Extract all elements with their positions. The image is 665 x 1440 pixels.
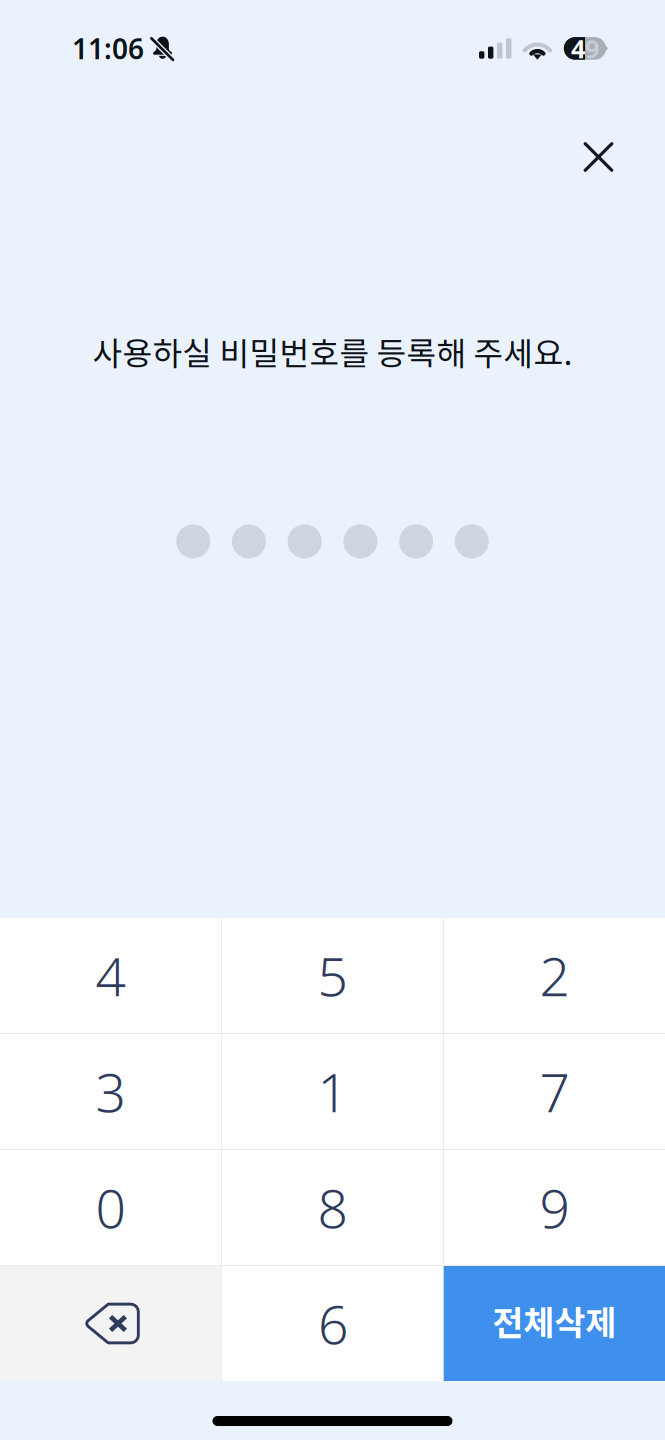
button[interactable]: 전체삭제 [444,1266,665,1381]
staticText: 6 [318,1288,348,1359]
staticText: 49 [571,32,599,65]
button[interactable]: 0 [0,1150,221,1265]
button[interactable]: 한 글자 지우기 [0,1266,221,1381]
staticText: 49 [571,32,599,65]
staticText: 3 [95,1056,125,1127]
button[interactable]: 1 [222,1034,443,1149]
button[interactable]: 3 [0,1034,221,1149]
staticText: 4 [95,940,125,1011]
button[interactable]: 8 [222,1150,443,1265]
staticText: 9 [539,1172,569,1243]
button[interactable]: 5 [222,918,443,1033]
staticText: 7 [539,1056,569,1127]
staticText: 2 [539,940,569,1011]
button[interactable]: 6 [222,1266,444,1381]
staticText: 11:06 [72,30,144,67]
button[interactable]: 4 [0,918,221,1033]
staticText: 전체삭제 [492,1296,616,1345]
staticText: 8 [317,1172,347,1243]
staticText: 0 [95,1172,125,1243]
staticText: 1 [317,1056,347,1127]
button[interactable]: 닫기 [577,136,620,178]
button[interactable]: 9 [444,1150,665,1265]
button[interactable]: 7 [444,1034,665,1149]
button[interactable]: 2 [444,918,665,1033]
staticText: 5 [317,940,347,1011]
staticText: 사용하실 비밀번호를 등록해 주세요. [92,328,572,374]
